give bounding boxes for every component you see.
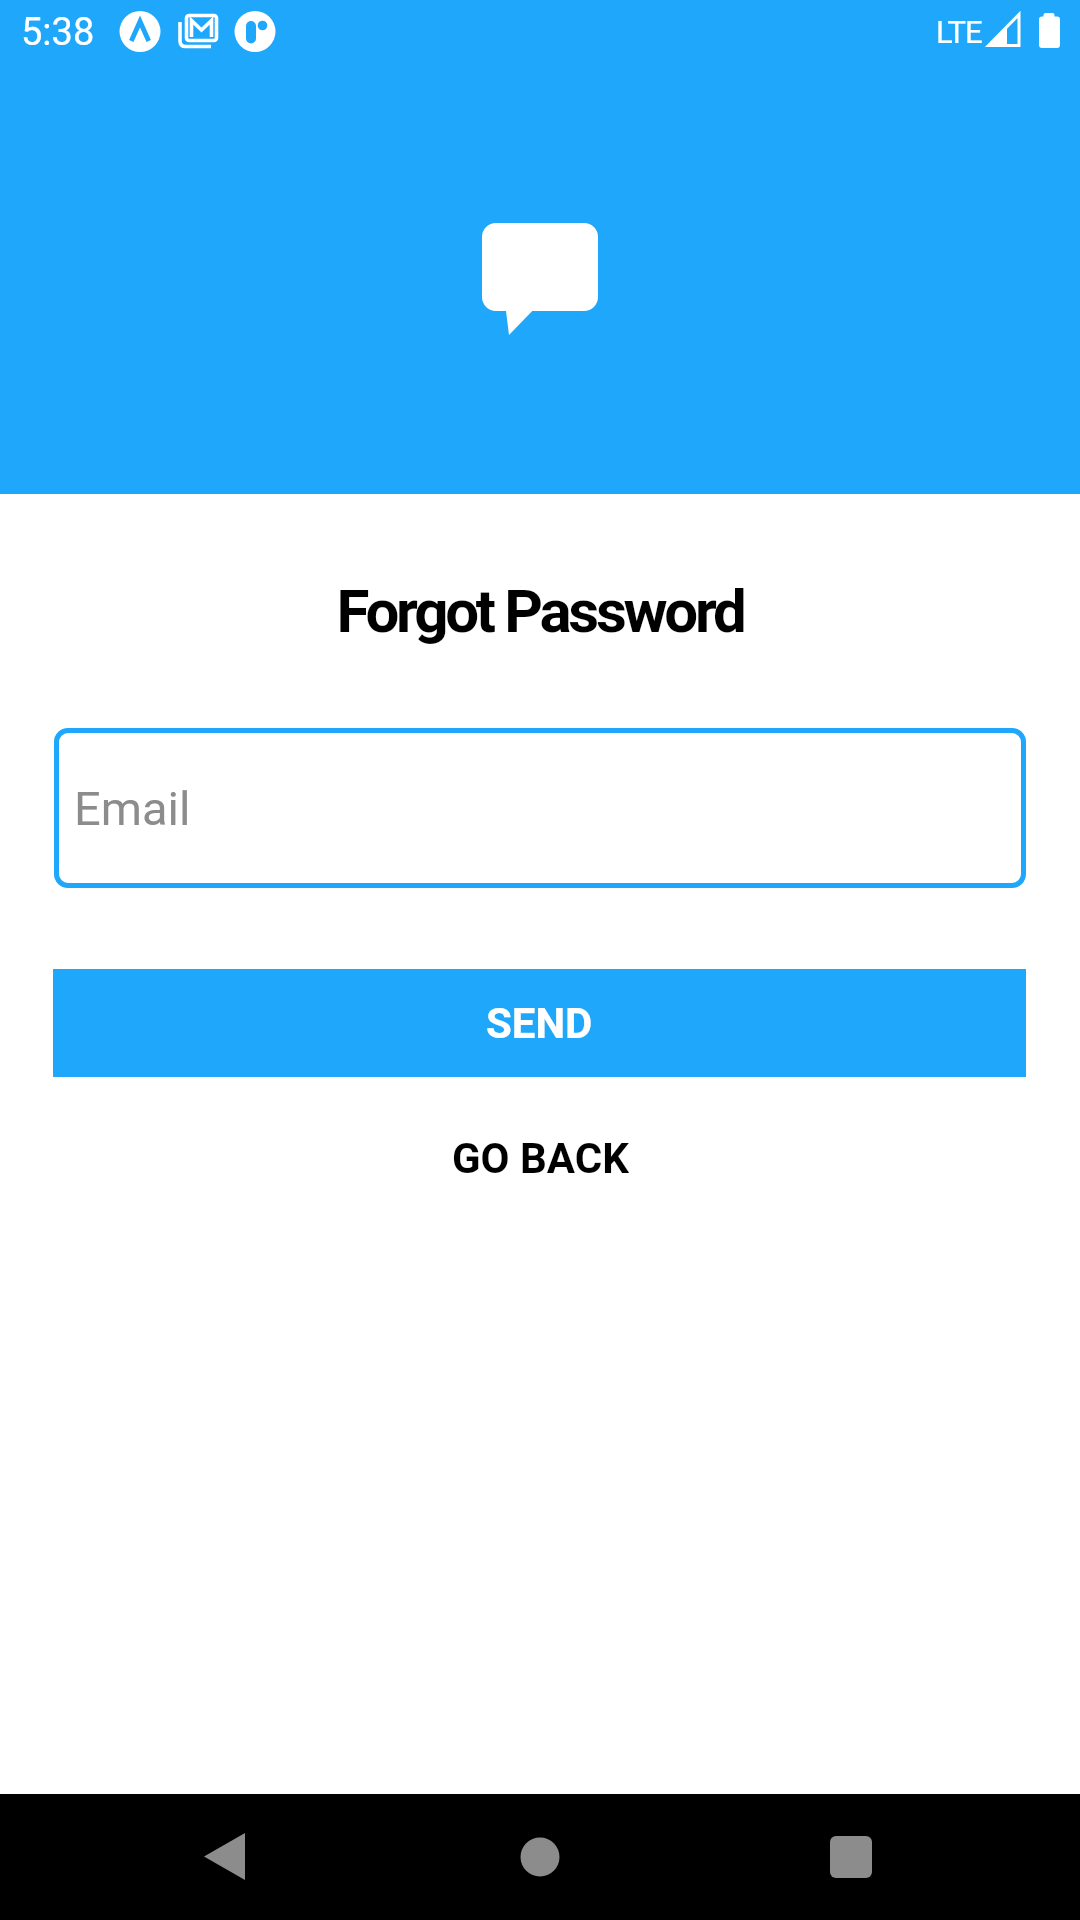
button[interactable]: SEND (53, 969, 1026, 1077)
button[interactable] (788, 1794, 914, 1920)
staticText: Email (74, 781, 191, 836)
button[interactable] (162, 1794, 288, 1920)
staticText: Forgot Password (0, 576, 1080, 646)
button[interactable]: Email (54, 728, 1026, 888)
staticText: GO BACK (452, 1134, 629, 1183)
button[interactable] (477, 1794, 603, 1920)
staticText: SEND (486, 999, 593, 1048)
button[interactable]: GO BACK (432, 1126, 649, 1191)
staticText: LTE (936, 14, 982, 50)
staticText: 5:38 (21, 10, 95, 55)
